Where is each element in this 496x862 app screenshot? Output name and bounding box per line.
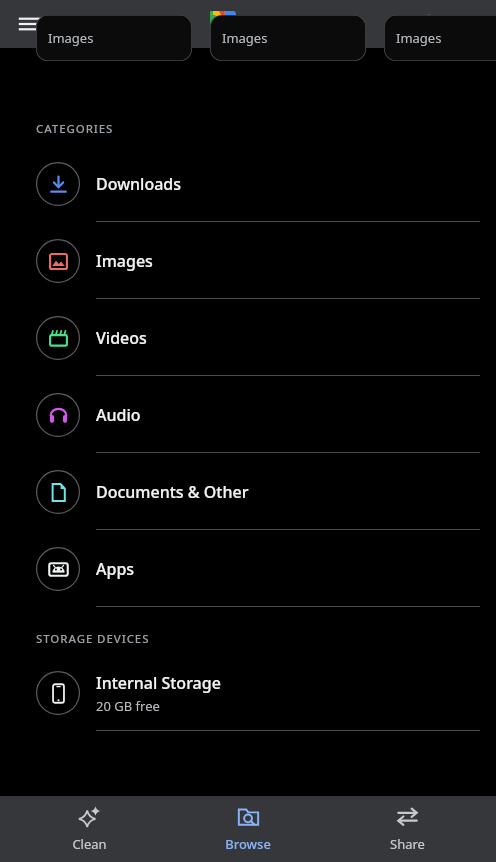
button[interactable]: Open navigation menu [10, 4, 50, 44]
staticText: Internal Storage [96, 672, 221, 694]
button[interactable]: Search [408, 2, 452, 46]
button[interactable]: Share [337, 796, 477, 862]
staticText: STORAGE DEVICES [36, 631, 150, 647]
button[interactable]: Images [210, 15, 366, 61]
staticText: Images [96, 250, 153, 272]
button[interactable]: Browse [178, 796, 318, 862]
button[interactable]: Apps [0, 530, 496, 607]
staticText: Clean [72, 835, 107, 853]
button[interactable]: More options [452, 4, 492, 44]
staticText: Downloads [96, 173, 182, 195]
button[interactable]: Videos [0, 299, 496, 376]
button[interactable]: Audio [0, 376, 496, 453]
button[interactable]: Documents & Other [0, 453, 496, 530]
staticText: Images [48, 29, 94, 47]
staticText: Browse [225, 835, 271, 853]
staticText: Images [396, 29, 442, 47]
button[interactable]: Images [36, 15, 192, 61]
staticText: Share [390, 835, 425, 853]
button[interactable]: Downloads [0, 145, 496, 222]
staticText: Audio [96, 404, 141, 426]
staticText: Files [245, 11, 286, 37]
button[interactable]: Images [384, 15, 496, 61]
button[interactable]: Clean [19, 796, 159, 862]
staticText: Documents & Other [96, 481, 249, 503]
staticText: Apps [96, 558, 135, 580]
staticText: 20 GB free [96, 697, 160, 715]
button[interactable]: Internal Storage [0, 655, 496, 731]
staticText: Images [222, 29, 268, 47]
staticText: CATEGORIES [36, 121, 114, 137]
staticText: Videos [96, 327, 147, 349]
button[interactable]: Images [0, 222, 496, 299]
